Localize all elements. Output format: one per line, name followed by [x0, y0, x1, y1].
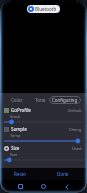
staticText: GoProfile: [11, 107, 31, 113]
button[interactable]: Recents: [14, 180, 27, 193]
staticText: Reset: [14, 171, 26, 177]
button[interactable]: Size: [0, 144, 87, 163]
staticText: Temp: [10, 133, 21, 138]
button[interactable]: Configuring: [49, 96, 81, 104]
staticText: Configuring: [52, 97, 78, 103]
staticText: Used: [72, 146, 82, 151]
staticText: Size: [10, 152, 18, 157]
button[interactable]: GoProfile: [0, 106, 87, 125]
staticText: Stock: [10, 114, 21, 119]
staticText: Sample: [11, 126, 27, 132]
button[interactable]: Reset: [9, 168, 31, 180]
staticText: Default: [68, 108, 82, 113]
button[interactable]: Tone: [35, 97, 46, 103]
button[interactable]: Bluetooth: [27, 5, 60, 13]
button[interactable]: Back: [60, 180, 73, 193]
button[interactable]: Sample: [0, 125, 87, 144]
staticText: Bluetooth: [35, 6, 57, 12]
button[interactable]: Done: [52, 168, 74, 180]
staticText: Done: [57, 171, 69, 177]
button[interactable]: Home: [37, 180, 50, 193]
staticText: Size: [11, 145, 20, 151]
button[interactable]: Color: [11, 97, 23, 103]
staticText: Cheng: [69, 127, 82, 132]
